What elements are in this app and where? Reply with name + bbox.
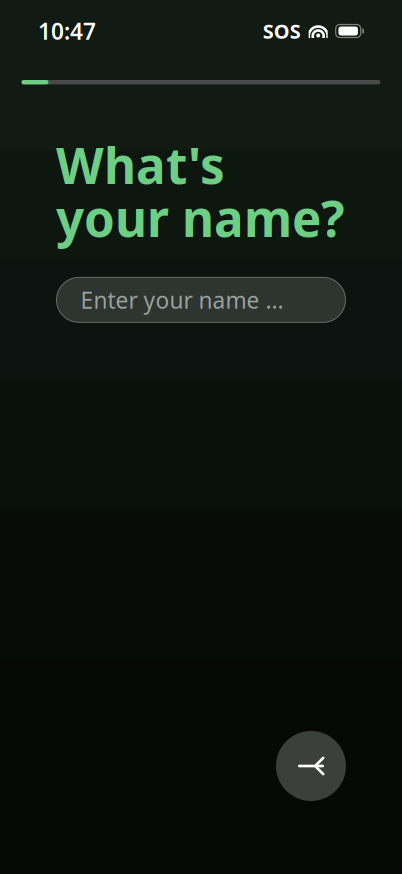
staticText: What's	[56, 132, 225, 198]
staticText: your name?	[56, 185, 345, 251]
staticText: SOS	[263, 18, 301, 44]
staticText: Enter your name ...	[80, 285, 283, 315]
staticText: 10:47	[38, 16, 96, 46]
button[interactable]: Next	[276, 731, 346, 801]
button[interactable]: Enter your name ...	[56, 277, 345, 322]
